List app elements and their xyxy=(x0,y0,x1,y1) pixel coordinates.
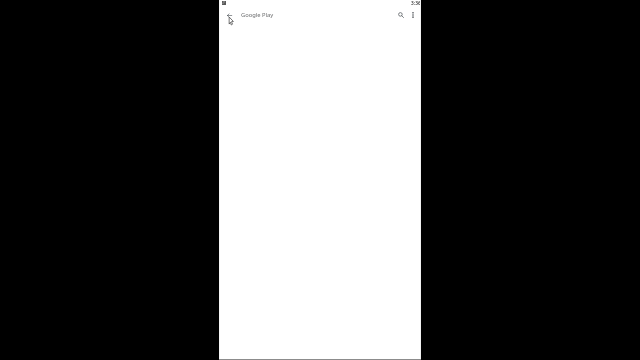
button[interactable]: More options xyxy=(407,9,419,21)
staticText: Google Play xyxy=(241,11,274,19)
button[interactable]: Search xyxy=(395,9,407,21)
staticText: 3:36 xyxy=(411,0,421,7)
button[interactable]: Back xyxy=(223,9,236,22)
